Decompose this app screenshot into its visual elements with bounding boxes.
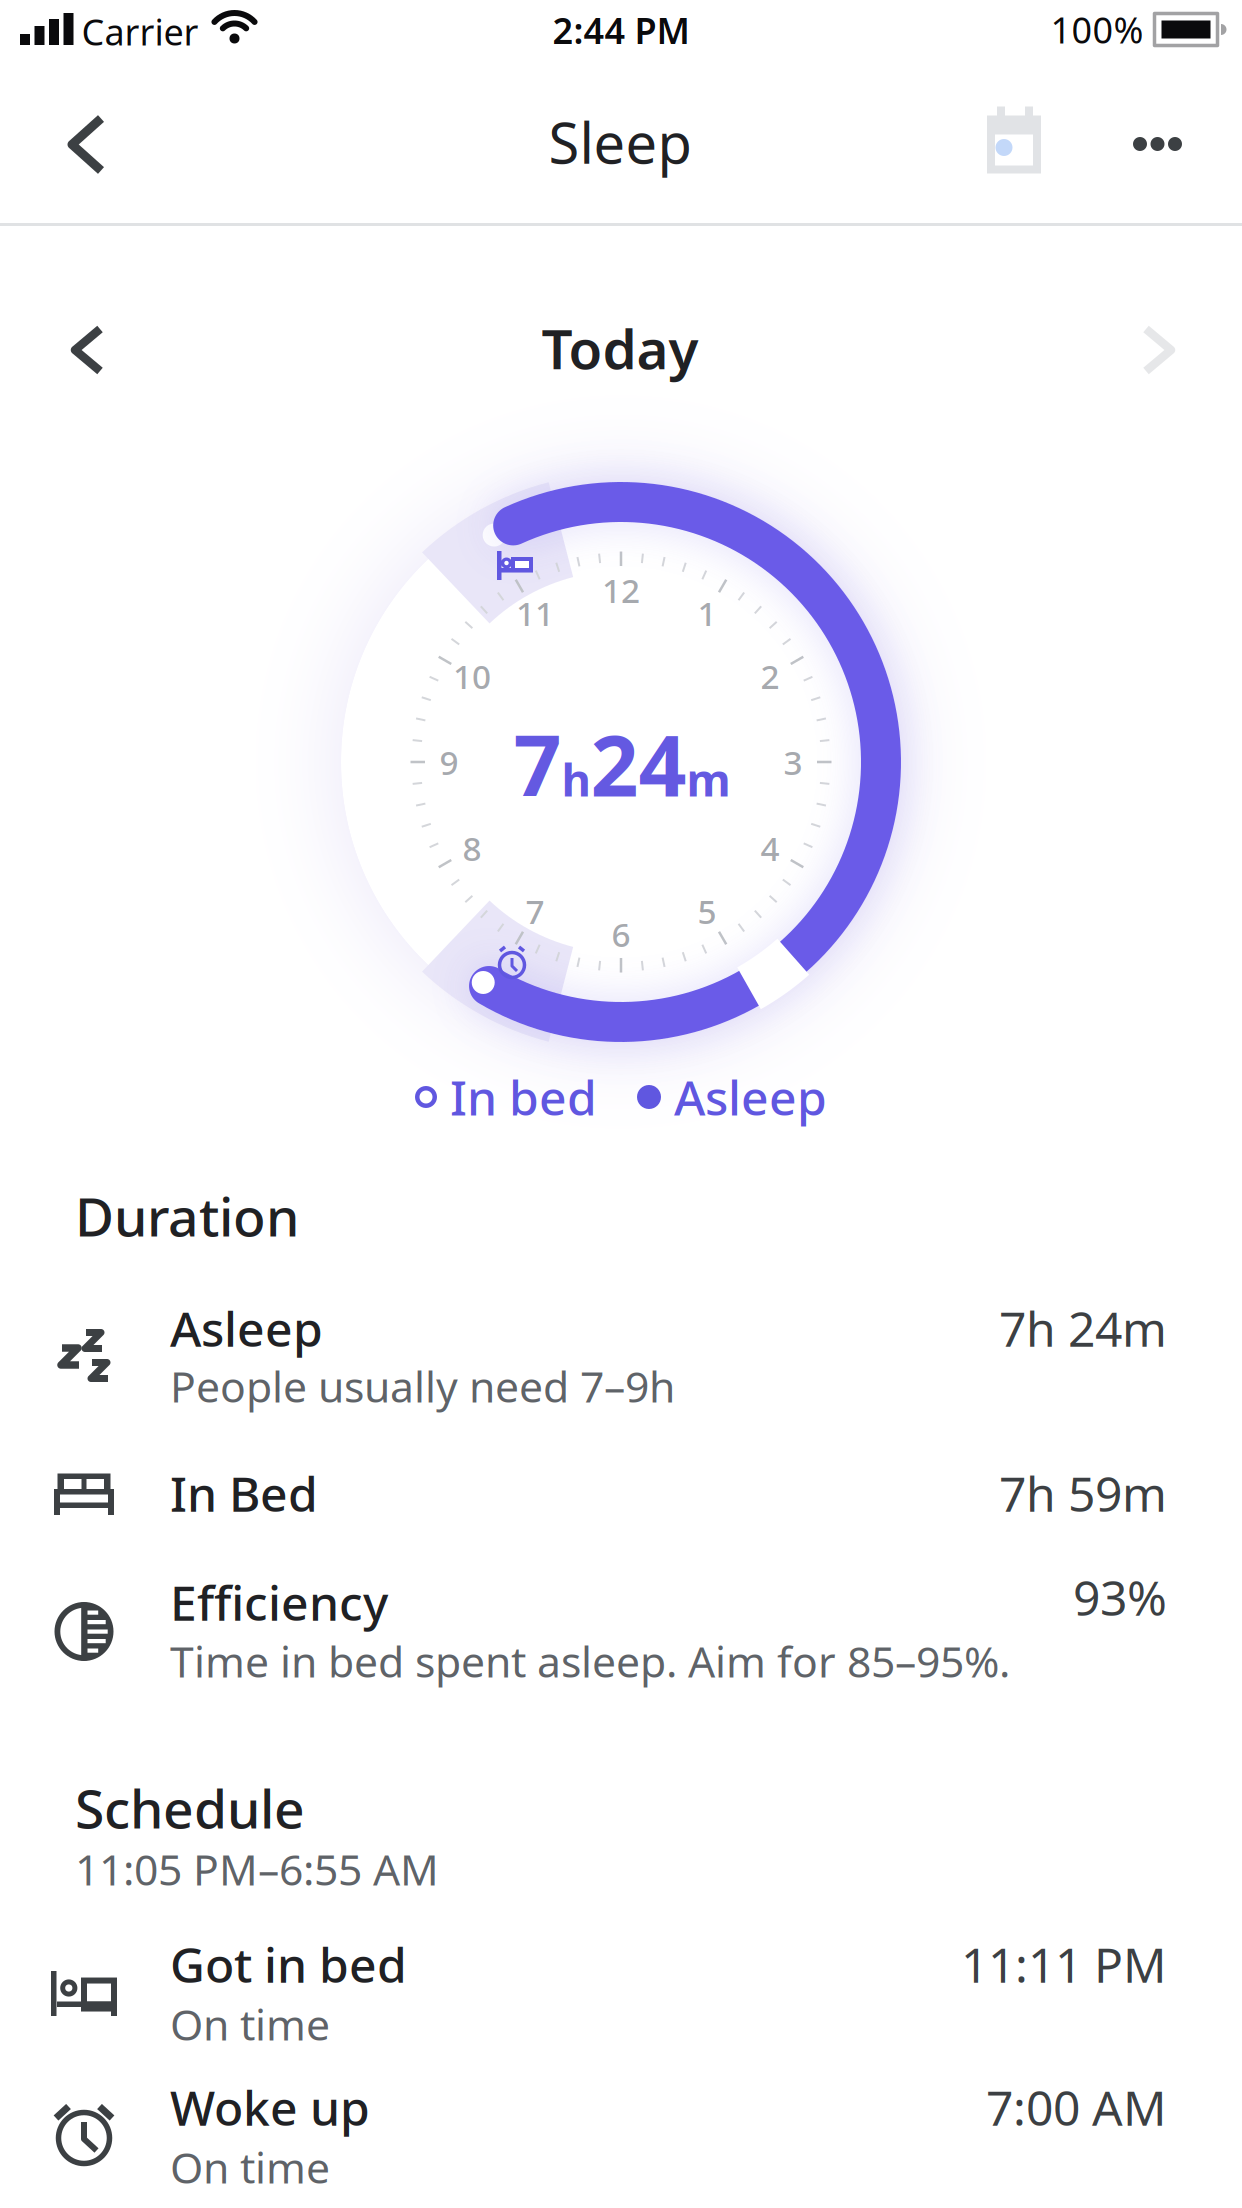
- staticText: Today: [541, 312, 698, 384]
- staticText: 7h 24m: [999, 1296, 1167, 1360]
- staticText: 7h24m: [513, 708, 730, 820]
- staticText: Sleep: [548, 105, 691, 179]
- staticText: 11:11 PM: [961, 1932, 1167, 1996]
- staticText: 9: [439, 740, 458, 784]
- staticText: 93%: [1073, 1565, 1167, 1629]
- staticText: 10: [453, 654, 491, 698]
- staticText: Got in bed: [170, 1932, 407, 1996]
- staticText: Asleep: [674, 1065, 827, 1129]
- staticText: 11: [516, 591, 554, 635]
- staticText: Carrier: [81, 8, 198, 55]
- staticText: In bed: [450, 1065, 597, 1129]
- staticText: Woke up: [170, 2075, 370, 2139]
- staticText: 7: [525, 889, 544, 933]
- button[interactable]: [987, 106, 1041, 173]
- staticText: In Bed: [170, 1461, 318, 1525]
- button[interactable]: [1103, 295, 1213, 405]
- staticText: 5: [697, 889, 716, 933]
- staticText: 12: [602, 568, 640, 612]
- staticText: On time: [170, 2139, 330, 2195]
- staticText: Schedule: [75, 1772, 305, 1843]
- staticText: Asleep: [170, 1296, 323, 1360]
- staticText: 11:05 PM–6:55 AM: [75, 1841, 439, 1897]
- staticText: 7:00 AM: [986, 2075, 1167, 2139]
- staticText: Duration: [75, 1180, 299, 1251]
- staticText: 2: [760, 654, 779, 698]
- button[interactable]: [1133, 134, 1182, 154]
- staticText: 2:44 PM: [552, 6, 689, 54]
- staticText: Time in bed spent asleep. Aim for 85–95%…: [170, 1633, 1010, 1689]
- staticText: 4: [760, 826, 779, 870]
- staticText: People usually need 7–9h: [170, 1358, 675, 1414]
- staticText: 6: [611, 912, 630, 956]
- staticText: 7h 59m: [999, 1461, 1167, 1525]
- staticText: 100%: [1050, 6, 1143, 53]
- staticText: 3: [783, 740, 802, 784]
- button[interactable]: [25, 84, 145, 204]
- staticText: On time: [170, 1996, 330, 2052]
- staticText: 8: [462, 826, 481, 870]
- staticText: Efficiency: [170, 1570, 388, 1634]
- staticText: 1: [697, 591, 716, 635]
- button[interactable]: [33, 295, 143, 405]
